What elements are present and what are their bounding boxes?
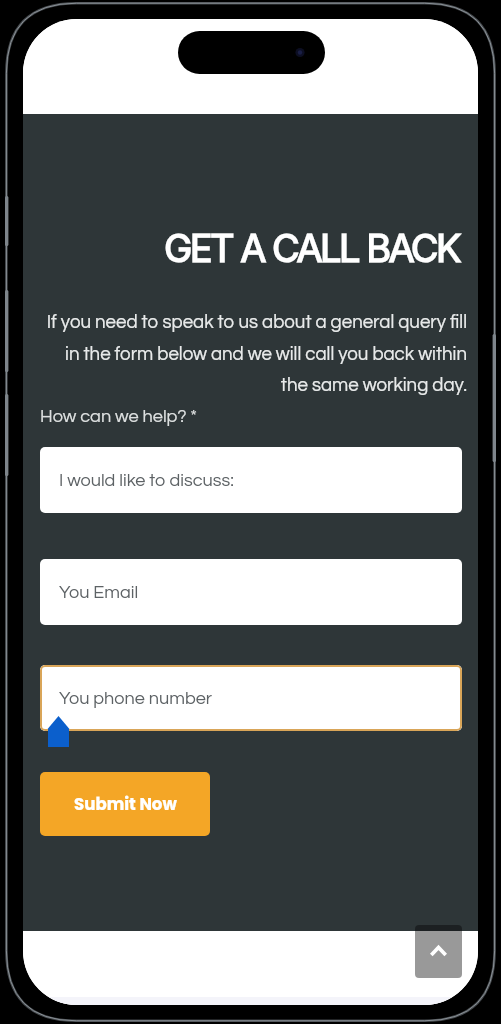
staticText: GET A CALL BACK xyxy=(23,225,459,271)
button[interactable]: Submit Now xyxy=(40,772,210,836)
staticText: Submit Now xyxy=(74,793,177,816)
staticText: If you need to speak to us about a gener… xyxy=(37,313,467,395)
staticText: How can we help? * xyxy=(40,407,198,426)
staticText: I would like to discuss: xyxy=(59,471,234,490)
staticText: You phone number xyxy=(59,689,212,708)
button[interactable]: I would like to discuss: xyxy=(40,447,462,513)
button[interactable]: You phone number xyxy=(40,665,462,731)
button[interactable]: You Email xyxy=(40,559,462,625)
button[interactable]: Scroll to top xyxy=(415,925,462,978)
staticText: You Email xyxy=(59,583,139,602)
